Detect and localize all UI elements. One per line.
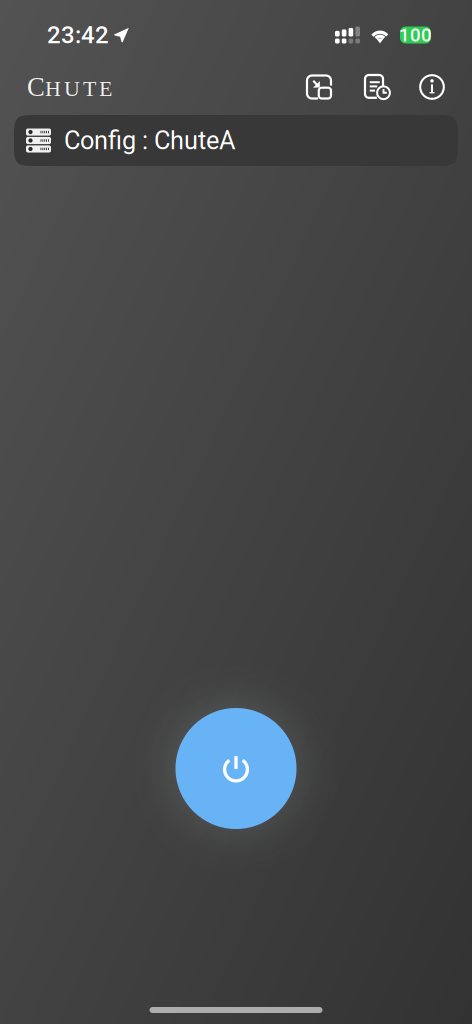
staticText: 23:42: [47, 21, 109, 49]
staticText: HUTE: [45, 76, 112, 101]
button[interactable]: History: [358, 68, 397, 106]
button[interactable]: Power: [175, 708, 296, 829]
button[interactable]: Info: [412, 67, 452, 107]
button[interactable]: Picture in Picture: [300, 68, 338, 105]
staticText: 100: [399, 24, 432, 46]
button[interactable]: Config : ChuteA: [14, 115, 458, 166]
staticText: C: [27, 72, 45, 102]
staticText: Config : ChuteA: [64, 126, 236, 155]
